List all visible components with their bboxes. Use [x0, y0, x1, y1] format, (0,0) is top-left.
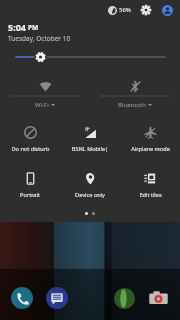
button[interactable]: Wi-Fi — [10, 77, 80, 113]
staticText: Edit tiles — [139, 191, 162, 199]
staticText: 56% — [119, 6, 131, 14]
staticText: Do not disturb — [11, 145, 50, 153]
button[interactable]: Location device only — [62, 165, 118, 207]
staticText: BSNL Mobile|CellOne — [62, 145, 118, 153]
staticText: Wi-Fi — [35, 101, 49, 109]
button[interactable]: Messages — [45, 286, 69, 310]
staticText: Portrait — [20, 191, 40, 199]
button[interactable]: Brightness — [0, 47, 180, 67]
staticText: 5:04 — [8, 21, 26, 33]
button[interactable]: Bluetooth — [100, 77, 170, 113]
button[interactable]: App — [112, 286, 136, 310]
button[interactable]: Mobile data — [62, 119, 118, 161]
button[interactable]: Phone — [10, 286, 34, 310]
staticText: Device only — [75, 191, 105, 199]
button[interactable]: Edit tiles — [122, 165, 178, 207]
button[interactable]: Settings — [139, 3, 153, 17]
button[interactable]: Camera — [146, 286, 170, 310]
button[interactable]: Airplane mode — [122, 119, 178, 161]
button[interactable]: User — [160, 3, 174, 17]
staticText: Bluetooth — [118, 101, 146, 109]
button[interactable]: Portrait — [2, 165, 58, 207]
button[interactable]: Do not disturb — [2, 119, 58, 161]
staticText: PM — [28, 23, 39, 32]
staticText: Airplane mode — [131, 145, 170, 153]
staticText: Tuesday, October 10 — [8, 34, 71, 43]
